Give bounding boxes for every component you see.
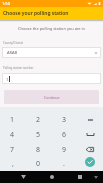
staticText: Continue (44, 95, 60, 100)
staticText: 9 (62, 145, 67, 155)
button[interactable]: 4 (0, 127, 25, 142)
staticText: 5 (36, 130, 41, 140)
staticText: County/District (3, 41, 24, 45)
staticText: Choose your polling station (3, 10, 69, 17)
button[interactable]: Home (46, 171, 58, 183)
staticText: , (12, 159, 14, 169)
staticText: 1 (10, 115, 15, 125)
button[interactable]: Recents (74, 171, 86, 183)
staticText: Polling station number (3, 66, 34, 70)
button[interactable]: 7 (0, 142, 25, 157)
other: Backspace (86, 147, 94, 152)
staticText: 8 (36, 145, 41, 155)
staticText: ARAB (7, 50, 18, 55)
button[interactable]: 0 (25, 157, 51, 171)
button[interactable]: 9 (51, 142, 77, 157)
button[interactable]: 8 (25, 142, 51, 157)
button[interactable]: ARAB (2, 47, 101, 58)
button[interactable]: Back (17, 171, 29, 183)
button[interactable]: 1 (0, 112, 25, 127)
staticText: 6 (62, 130, 67, 140)
button[interactable] (77, 127, 103, 142)
button[interactable]: Backspace (77, 142, 103, 157)
staticText: 0 (36, 159, 41, 169)
staticText: 2 (36, 115, 41, 125)
button[interactable]: 6 (51, 127, 77, 142)
staticText: 3 (62, 115, 67, 125)
staticText: 4 (10, 130, 15, 140)
button[interactable]: 2 (25, 112, 51, 127)
staticText: 1:50 (2, 1, 10, 6)
button[interactable]: 1 (2, 73, 101, 84)
button[interactable]: Done (77, 157, 103, 171)
button[interactable]: Hide keyboard (93, 174, 99, 180)
button[interactable] (77, 112, 103, 127)
staticText: . (63, 159, 65, 169)
button[interactable]: Continue (4, 90, 99, 104)
staticText: 7 (10, 145, 15, 155)
staticText: Choose the polling station you are in (0, 26, 103, 31)
button[interactable]: 5 (25, 127, 51, 142)
button[interactable]: , (0, 157, 25, 171)
button[interactable]: . (51, 157, 77, 171)
button[interactable]: Done (85, 157, 95, 167)
button[interactable]: 3 (51, 112, 77, 127)
staticText: 1 (6, 77, 9, 82)
